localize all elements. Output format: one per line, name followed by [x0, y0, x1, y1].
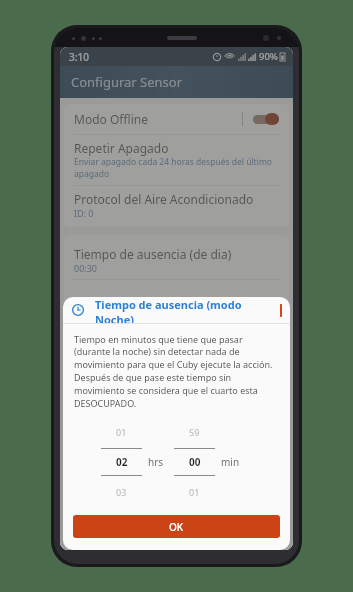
staticText: hrs — [148, 455, 164, 469]
button[interactable]: Repetir Apagado — [64, 135, 289, 185]
staticText: 3:10 — [69, 50, 89, 64]
staticText: OK — [169, 520, 184, 534]
staticText: 01 — [116, 426, 127, 438]
button[interactable]: 59 — [174, 426, 215, 498]
staticText: Repetir Apagado — [74, 140, 169, 156]
staticText: Tiempo en minutos que tiene que pasar (d… — [74, 333, 279, 410]
staticText: Modo Offline — [74, 111, 148, 127]
staticText: 02 — [116, 455, 128, 469]
staticText: Configurar Sensor — [71, 73, 183, 91]
staticText: ID: 0 — [74, 207, 94, 219]
button[interactable]: OK — [73, 515, 280, 538]
staticText: Protocol del Aire Acondicionado — [74, 191, 254, 207]
staticText: Tiempo de ausencia (modo Noche) — [95, 297, 281, 323]
staticText: 59 — [189, 426, 200, 438]
staticText: Tiempo de ausencia (de dia) — [74, 246, 232, 262]
staticText: 03 — [116, 486, 127, 498]
staticText: Enviar apagado cada 24 horas después del… — [74, 156, 279, 180]
button[interactable]: Tiempo de ausencia (de dia) — [64, 241, 289, 279]
staticText: 90% — [259, 50, 278, 63]
staticText: 00 — [189, 455, 201, 469]
button[interactable]: 01 — [101, 426, 142, 498]
staticText: 01 — [189, 486, 200, 498]
staticText: 00:30 — [74, 262, 98, 274]
staticText: min — [221, 455, 240, 469]
button[interactable]: Modo Offline — [64, 104, 289, 134]
button[interactable]: Protocol del Aire Acondicionado — [64, 186, 289, 224]
